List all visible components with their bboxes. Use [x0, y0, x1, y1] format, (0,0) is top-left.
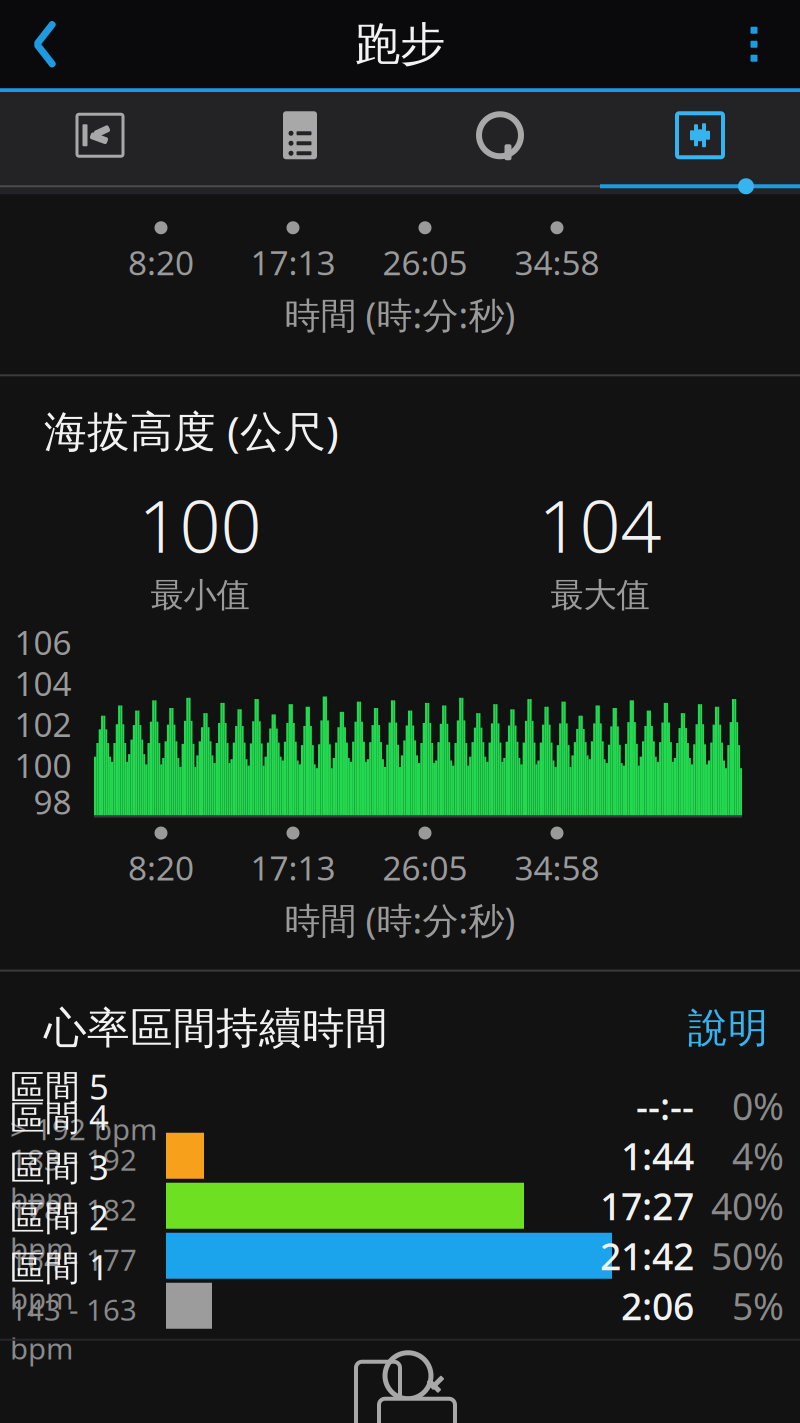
staticText: 34:58: [514, 845, 599, 890]
staticText: 時間 (時:分:秒): [284, 896, 515, 944]
staticText: 100: [14, 743, 71, 787]
staticText: 106: [14, 620, 71, 664]
staticText: 8:20: [128, 845, 194, 890]
button[interactable]: 地圖: [0, 92, 200, 178]
button[interactable]: 摘要: [200, 92, 400, 178]
staticText: 5%: [732, 1281, 784, 1331]
button[interactable]: 說明: [670, 994, 786, 1063]
staticText: 最大值: [550, 575, 649, 615]
staticText: 區間 1: [10, 1244, 109, 1290]
staticText: 區間 5: [10, 1063, 109, 1109]
staticText: 17:27: [600, 1181, 694, 1231]
button[interactable]: 旋轉裝置: [0, 1341, 800, 1423]
button[interactable]: 更多選項: [718, 4, 790, 84]
button[interactable]: 圖表: [600, 92, 800, 178]
staticText: 海拔高度 (公尺): [44, 402, 339, 459]
staticText: 183 - 192 bpm: [10, 1140, 137, 1218]
staticText: 2:06: [621, 1281, 694, 1331]
staticText: 104: [538, 477, 661, 573]
staticText: 164 - 177 bpm: [10, 1240, 137, 1318]
staticText: 21:42: [600, 1231, 694, 1281]
staticText: 102: [14, 702, 71, 746]
staticText: 8:20: [128, 240, 194, 285]
staticText: 跑步: [355, 16, 445, 72]
staticText: 26:05: [382, 240, 467, 285]
button[interactable]: 分圈: [400, 92, 600, 178]
staticText: 1:44: [621, 1131, 694, 1181]
staticText: 4%: [732, 1131, 784, 1181]
staticText: 50%: [711, 1231, 784, 1281]
staticText: 區間 2: [10, 1194, 109, 1240]
staticText: 26:05: [382, 845, 467, 890]
staticText: 時間 (時:分:秒): [284, 290, 515, 338]
staticText: 178 - 182 bpm: [10, 1190, 137, 1268]
staticText: 0%: [732, 1081, 784, 1131]
staticText: 34:58: [514, 240, 599, 285]
staticText: > 192 bpm: [10, 1109, 157, 1148]
staticText: 104: [14, 661, 71, 705]
staticText: 說明: [688, 1004, 768, 1053]
staticText: 98: [33, 779, 71, 824]
staticText: 區間 4: [10, 1094, 109, 1140]
staticText: 40%: [711, 1181, 784, 1231]
staticText: 17:13: [250, 845, 335, 890]
staticText: --:--: [636, 1081, 694, 1131]
staticText: 100: [138, 477, 261, 573]
staticText: 心率區間持續時間: [44, 1002, 388, 1054]
button[interactable]: 返回: [10, 4, 80, 84]
staticText: 區間 3: [10, 1144, 109, 1190]
staticText: 17:13: [250, 240, 335, 285]
staticText: 最小值: [150, 575, 249, 615]
staticText: 143 - 163 bpm: [10, 1290, 137, 1368]
